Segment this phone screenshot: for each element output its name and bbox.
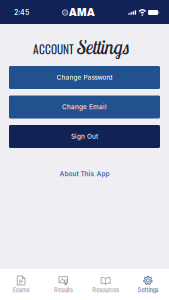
button[interactable]: Sign Out bbox=[9, 125, 160, 148]
button[interactable]: Exams bbox=[0, 269, 42, 300]
staticText: Exams bbox=[13, 287, 30, 294]
staticText: Change Password bbox=[56, 74, 112, 81]
button[interactable]: Settings bbox=[127, 269, 169, 300]
button[interactable]: Resources bbox=[84, 269, 127, 300]
staticText: Resources bbox=[92, 287, 119, 294]
staticText: Results bbox=[54, 287, 73, 294]
staticText: 2:45 bbox=[14, 8, 29, 17]
staticText: Settings bbox=[137, 287, 158, 294]
staticText: Sign Out bbox=[71, 133, 98, 140]
button[interactable]: Change Email bbox=[9, 95, 160, 118]
button[interactable]: Change Password bbox=[9, 66, 160, 89]
staticText: Change Email bbox=[62, 103, 107, 111]
staticText: ACCOUNT bbox=[33, 41, 74, 58]
staticText: About This App bbox=[59, 170, 109, 178]
staticText: Settings bbox=[77, 36, 130, 59]
button[interactable]: About This App bbox=[47, 162, 121, 186]
button[interactable]: Results bbox=[42, 269, 84, 300]
staticText: AMA bbox=[69, 7, 95, 18]
